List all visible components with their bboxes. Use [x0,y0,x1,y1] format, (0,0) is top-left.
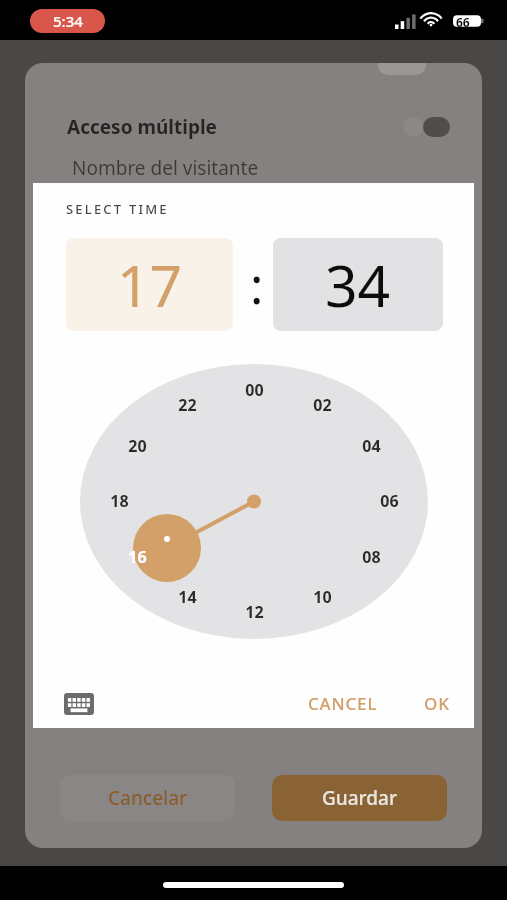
button[interactable] [378,63,426,75]
button[interactable]: 34 [273,238,443,331]
staticText: Cancelar [108,785,188,811]
staticText: 02 [313,394,332,416]
staticText: 04 [362,435,381,457]
button[interactable]: 08 [351,546,391,568]
button[interactable]: 12 [234,601,274,623]
staticText: 18 [110,490,129,512]
button[interactable]: 10 [302,586,342,608]
staticText: 16 [128,546,147,568]
button[interactable]: Guardar [272,775,447,821]
staticText: Guardar [322,785,397,811]
button[interactable]: CANCEL [295,683,390,723]
staticText: SELECT TIME [66,200,169,218]
button[interactable]: 20 [117,435,157,457]
button[interactable]: 14 [167,586,207,608]
button[interactable]: 17 [66,238,233,331]
button[interactable]: Cancelar [60,775,235,821]
staticText: 12 [245,601,264,623]
staticText: 08 [362,546,381,568]
staticText: 20 [128,435,147,457]
button[interactable]: 06 [369,490,409,512]
button[interactable]: 04 [351,435,391,457]
staticText: 66 [456,14,470,30]
button[interactable]: OK [408,683,466,723]
staticText: 22 [178,394,197,416]
staticText: OK [424,692,450,715]
staticText: 5:34 [53,11,83,31]
staticText: 34 [325,246,391,324]
button[interactable]: Acceso múltiple [25,108,482,146]
button[interactable]: 18 [99,490,139,512]
button[interactable]: Switch to text input [57,682,101,726]
button[interactable]: 00 [234,379,274,401]
staticText: 06 [380,490,399,512]
staticText: CANCEL [308,692,378,715]
staticText: 10 [313,586,332,608]
staticText: 14 [178,586,197,608]
staticText: 00 [245,379,264,401]
button[interactable]: 22 [167,394,207,416]
staticText: : [250,251,264,319]
button[interactable]: 02 [302,394,342,416]
button[interactable]: 16 [117,546,157,568]
staticText: 17 [117,246,183,324]
staticText: Acceso múltiple [67,114,217,140]
staticText: Nombre del visitante [72,155,259,181]
